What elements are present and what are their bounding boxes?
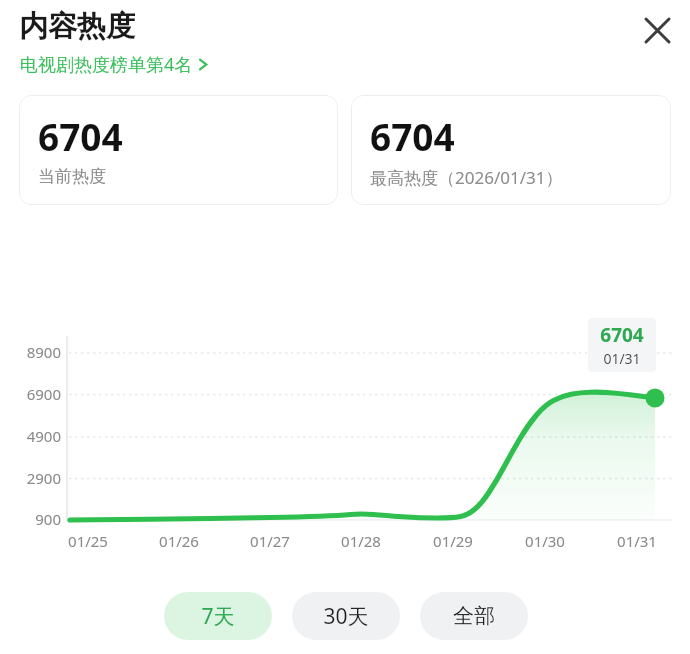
staticText: 01/29 [433, 531, 473, 551]
staticText: 7天 [201, 602, 235, 631]
button[interactable]: 6704 [19, 95, 338, 205]
staticText: 8900 [26, 342, 61, 362]
staticText: 01/31 [603, 349, 641, 368]
staticText: 01/25 [68, 531, 108, 551]
staticText: 6704 [600, 322, 644, 348]
button[interactable]: 电视剧热度榜单第4名 [19, 51, 210, 78]
staticText: 30天 [323, 602, 369, 631]
button[interactable]: Close [635, 8, 679, 52]
staticText: 全部 [453, 603, 495, 629]
staticText: 6704 [38, 111, 123, 161]
staticText: 2900 [26, 468, 61, 488]
staticText: 最高热度（2026/01/31） [370, 166, 563, 189]
staticText: 内容热度 [19, 8, 135, 45]
button[interactable]: 全部 [420, 592, 528, 640]
staticText: 4900 [26, 426, 61, 446]
staticText: 01/27 [250, 531, 290, 551]
staticText: 01/30 [525, 531, 565, 551]
staticText: 当前热度 [38, 166, 106, 187]
staticText: 6900 [26, 384, 61, 404]
staticText: 900 [35, 509, 61, 529]
staticText: 6704 [370, 111, 455, 161]
staticText: 01/28 [341, 531, 381, 551]
button[interactable]: 7天 [164, 592, 272, 640]
button[interactable]: 6704 [351, 95, 671, 205]
staticText: 01/26 [159, 531, 199, 551]
staticText: 电视剧热度榜单第4名 [20, 52, 193, 77]
button[interactable]: 30天 [292, 592, 400, 640]
staticText: 01/31 [617, 531, 657, 551]
